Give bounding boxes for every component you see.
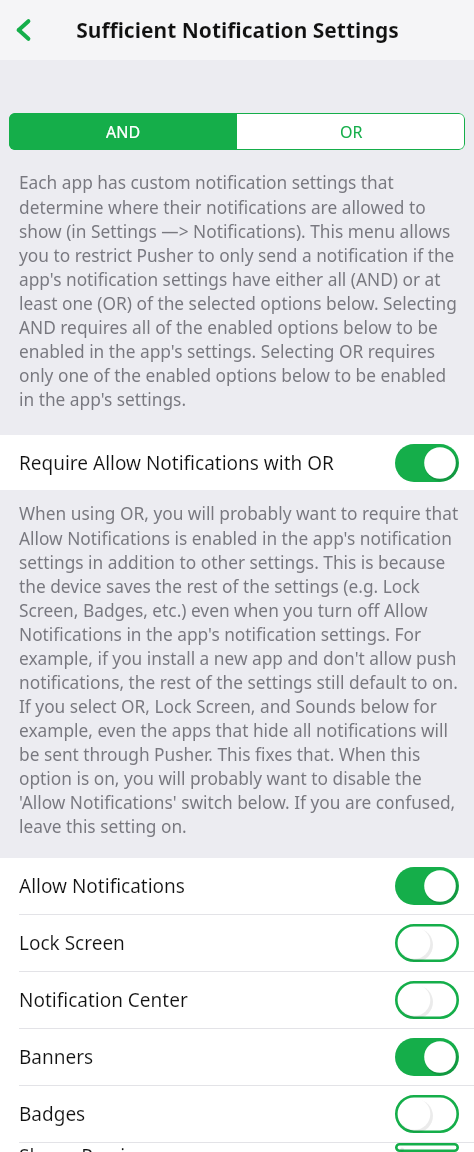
staticText: Require Allow Notifications with OR [19, 450, 334, 476]
button[interactable]: AND [9, 113, 237, 150]
button[interactable]: Allow Notifications [0, 858, 474, 914]
button[interactable]: OR [237, 113, 465, 150]
other: On [395, 444, 459, 482]
other: Off [395, 924, 459, 962]
button[interactable]: Badges [0, 1086, 474, 1142]
button[interactable]: Banners [0, 1029, 474, 1085]
staticText: Sufficient Notification Settings [76, 16, 399, 45]
other: Off [395, 1143, 459, 1152]
other: On [395, 867, 459, 905]
staticText: Notification Center [19, 987, 188, 1013]
button[interactable]: Notification Center [0, 972, 474, 1028]
other: On [395, 1038, 459, 1076]
button[interactable]: Lock Screen [0, 915, 474, 971]
button[interactable]: Back [2, 8, 46, 52]
staticText: Badges [19, 1101, 86, 1127]
staticText: OR [340, 121, 363, 143]
button[interactable]: Shows Previews [0, 1143, 474, 1152]
staticText: Shows Previews [19, 1143, 160, 1152]
other: Off [395, 1095, 459, 1133]
staticText: When using OR, you will probably want to… [19, 502, 461, 838]
staticText: Banners [19, 1044, 94, 1070]
staticText: Allow Notifications [19, 873, 185, 899]
staticText: Lock Screen [19, 930, 125, 956]
staticText: Each app has custom notification setting… [19, 171, 461, 411]
staticText: AND [106, 121, 141, 143]
other: Off [395, 981, 459, 1019]
button[interactable]: Require Allow Notifications with OR [0, 435, 474, 490]
